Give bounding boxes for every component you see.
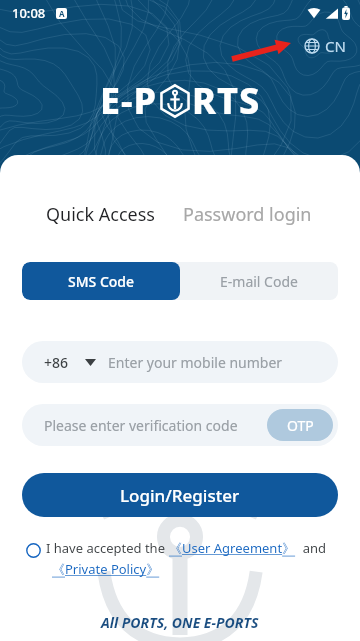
other: Change language	[304, 38, 320, 54]
button[interactable]: Change language	[300, 33, 350, 59]
staticText: E-mail Code	[220, 272, 298, 291]
staticText: Enter your mobile number	[108, 353, 283, 372]
button[interactable]: +86	[22, 341, 338, 383]
button[interactable]: Password login	[181, 198, 314, 231]
staticText: +86	[44, 353, 69, 372]
staticText: Login/Register	[120, 484, 240, 507]
staticText: Quick Access	[46, 202, 155, 227]
staticText: E-P	[100, 76, 158, 125]
staticText: Password login	[183, 202, 312, 227]
button[interactable]: SMS Code	[22, 262, 180, 300]
staticText: 10:08	[12, 4, 46, 22]
button[interactable]: OTP	[267, 409, 333, 441]
staticText: 《User Agreement》	[169, 539, 296, 557]
button[interactable]: Accept agreement checkbox	[22, 539, 44, 561]
button[interactable]: 《Private Policy》	[52, 560, 160, 578]
staticText: RTS	[192, 76, 261, 125]
button[interactable]: Login/Register	[22, 473, 338, 517]
staticText: 《Private Policy》	[52, 560, 160, 578]
staticText: A	[59, 8, 65, 19]
button[interactable]: Quick Access	[44, 198, 157, 231]
button[interactable]: Please enter verification code	[22, 404, 338, 446]
staticText: CN	[325, 36, 346, 56]
staticText: OTP	[287, 416, 314, 435]
staticText: and	[296, 539, 327, 557]
staticText: SMS Code	[68, 272, 135, 291]
staticText: I have accepted the	[46, 539, 169, 557]
other: Select country code	[85, 359, 96, 366]
button[interactable]: 《User Agreement》	[169, 539, 296, 557]
staticText: Please enter verification code	[44, 416, 238, 435]
button[interactable]: E-mail Code	[180, 262, 338, 300]
staticText: All PORTS, ONE E-PORTS	[101, 613, 259, 632]
